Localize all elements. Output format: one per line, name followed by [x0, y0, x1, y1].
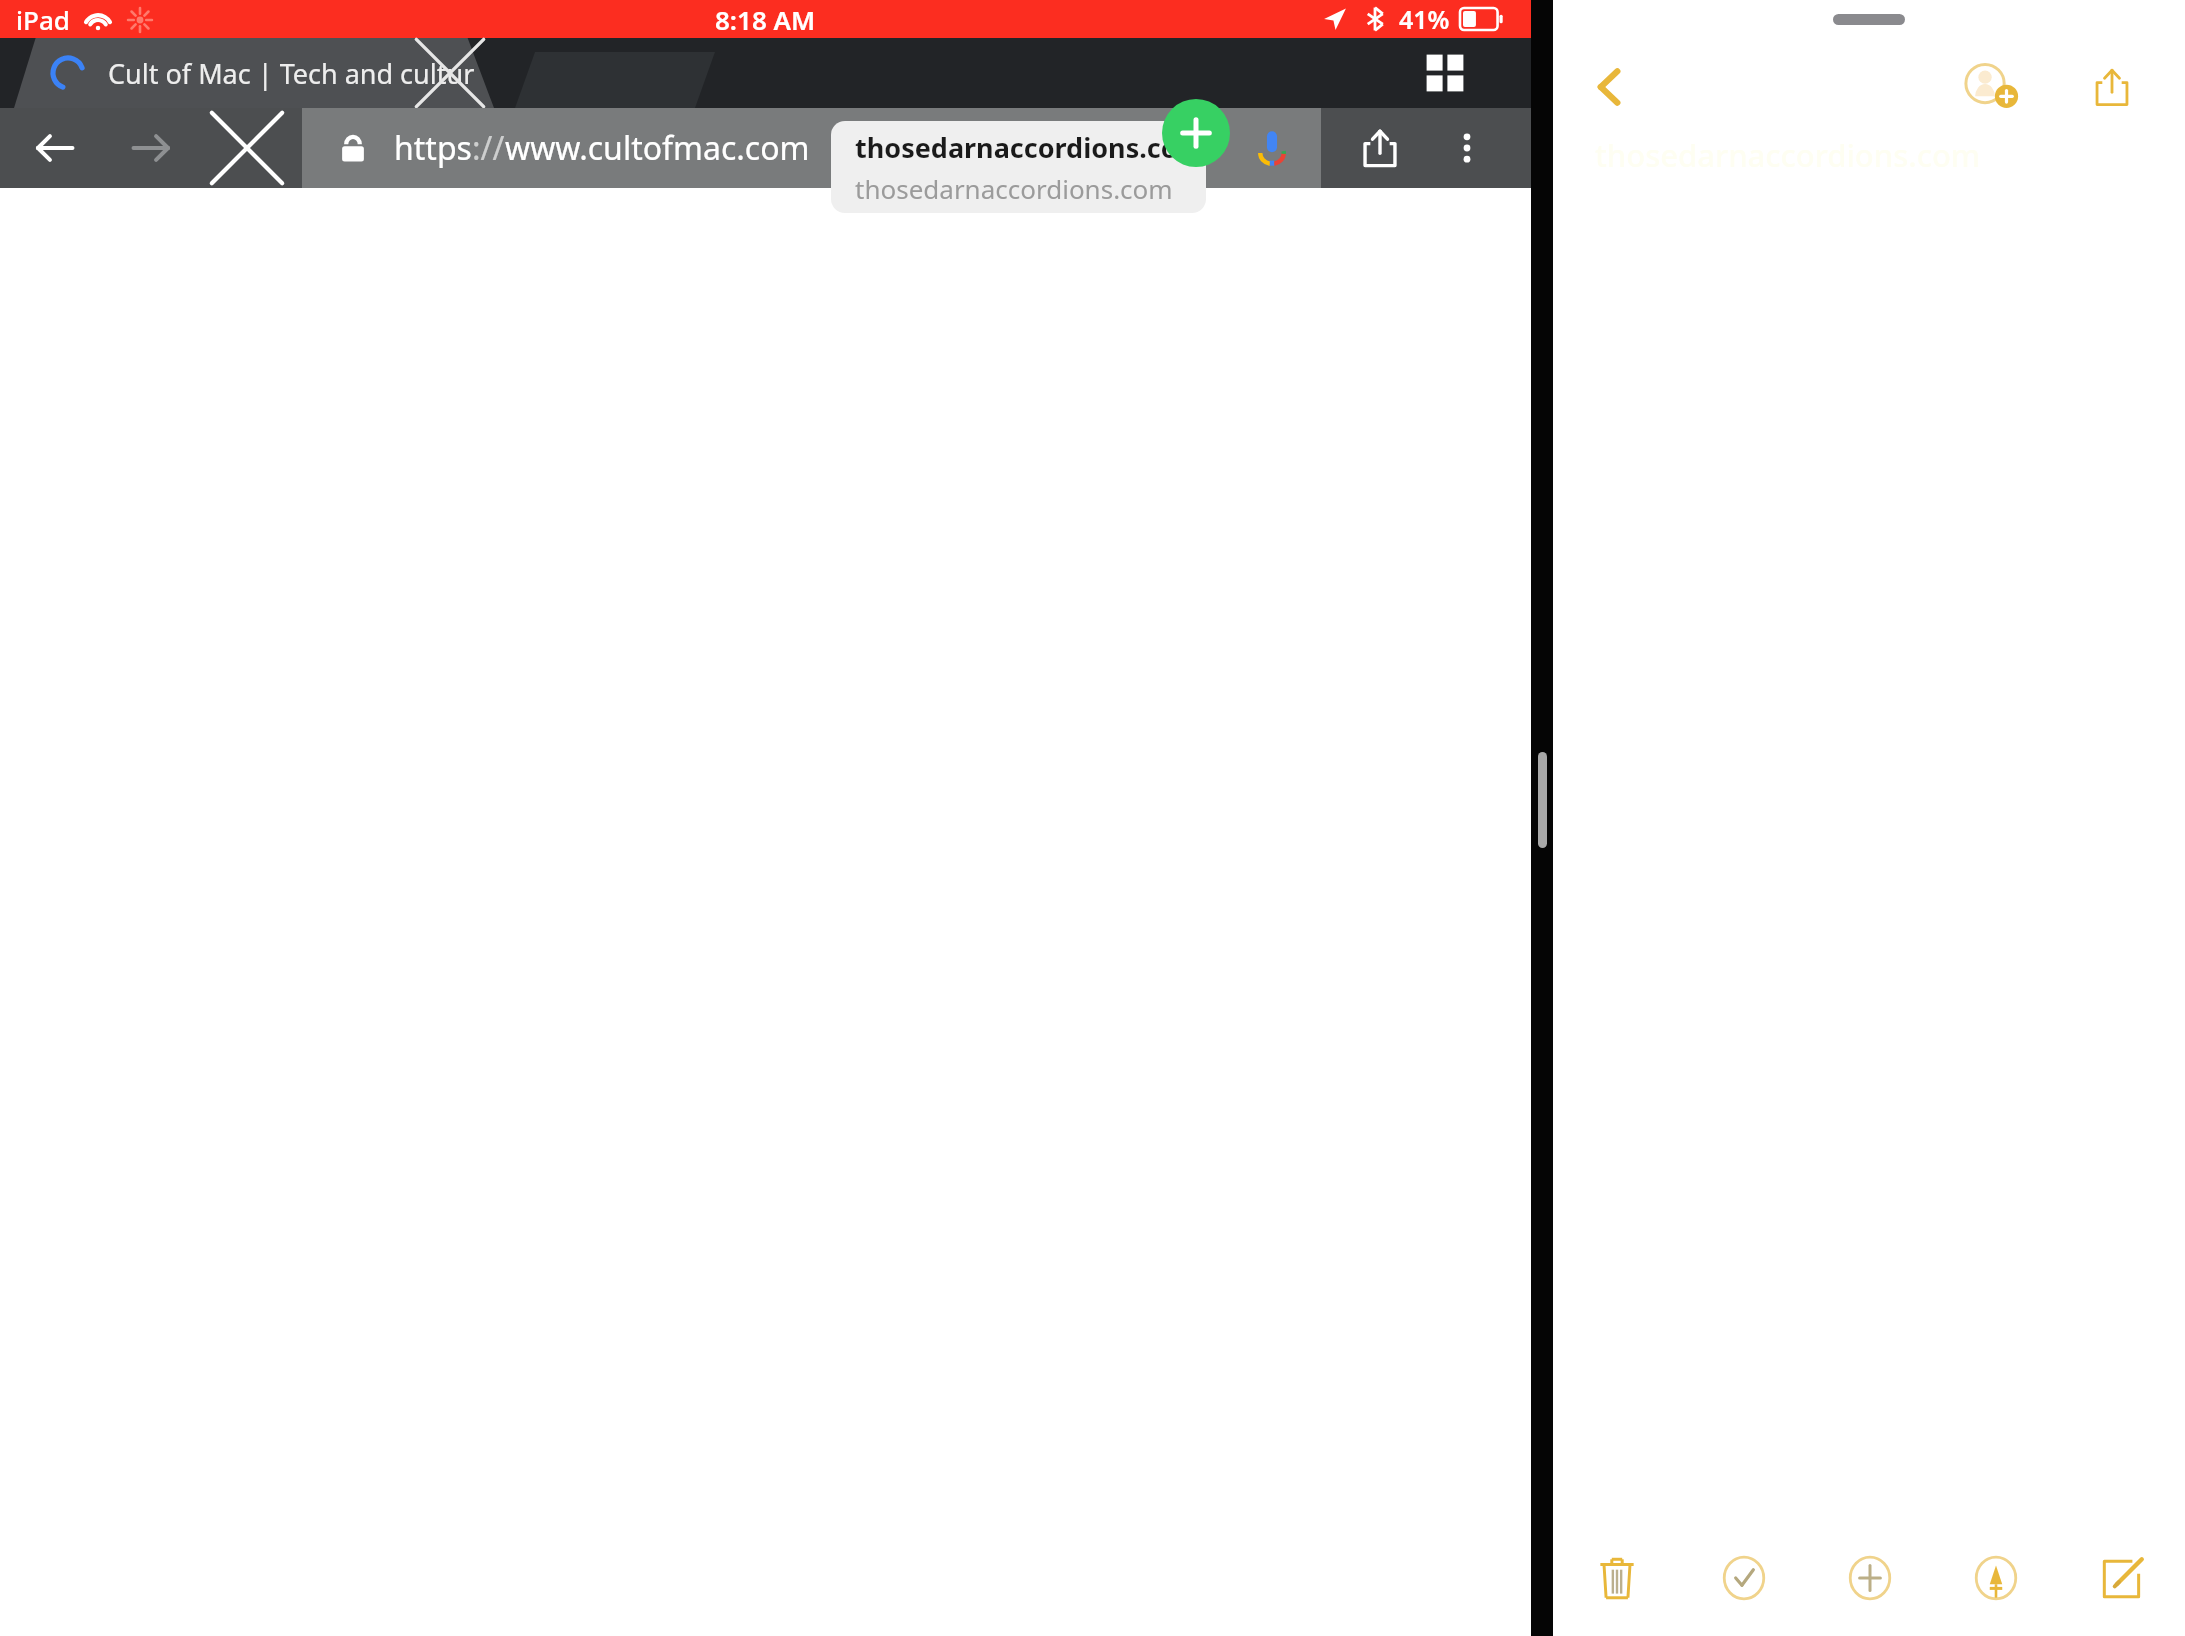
staticText: 41% — [1399, 2, 1450, 36]
button[interactable]: More options — [1437, 118, 1497, 178]
button[interactable]: Resize split view — [1538, 752, 1547, 848]
button[interactable]: Drag handle — [1833, 14, 1905, 25]
button[interactable]: Bookmark — [1155, 115, 1221, 181]
button[interactable]: Back — [1575, 52, 1645, 122]
button[interactable]: Stop loading — [214, 115, 280, 181]
button[interactable]: Add suggestion — [1162, 99, 1230, 167]
button[interactable]: Add people — [1951, 46, 2033, 128]
staticText: iPad — [16, 2, 70, 37]
button[interactable]: Markup — [1933, 1520, 2059, 1636]
button[interactable]: thosedarnaccordions.com — [831, 121, 1206, 213]
button[interactable]: Cult of Mac | Tech and cultur — [50, 38, 480, 108]
staticText: thosedarnaccordions.com — [855, 171, 1173, 206]
button[interactable]: Switch tabs — [1413, 41, 1477, 105]
button[interactable]: Close tab — [428, 51, 472, 95]
button[interactable]: Compose — [2059, 1520, 2185, 1636]
staticText: thosedarnaccordions.com — [1595, 134, 1981, 176]
staticText: :// — [472, 126, 505, 170]
staticText: thosedarnaccordions.com — [855, 129, 1204, 166]
staticText: 8:18 AM — [715, 2, 816, 37]
button[interactable]: Forward — [118, 115, 184, 181]
button[interactable]: Add — [1807, 1520, 1933, 1636]
button[interactable]: Delete — [1553, 1520, 1680, 1636]
button[interactable]: https — [336, 108, 1305, 188]
button[interactable]: Mark complete — [1680, 1520, 1807, 1636]
staticText: www.cultofmac.com — [505, 126, 810, 170]
button[interactable]: Back — [22, 115, 88, 181]
staticText: https — [394, 126, 472, 170]
staticText: Cult of Mac | Tech and cultur — [108, 55, 475, 92]
button[interactable]: Share — [2075, 50, 2149, 124]
button[interactable]: Voice search — [1239, 115, 1305, 181]
button[interactable]: Share — [1347, 115, 1413, 181]
